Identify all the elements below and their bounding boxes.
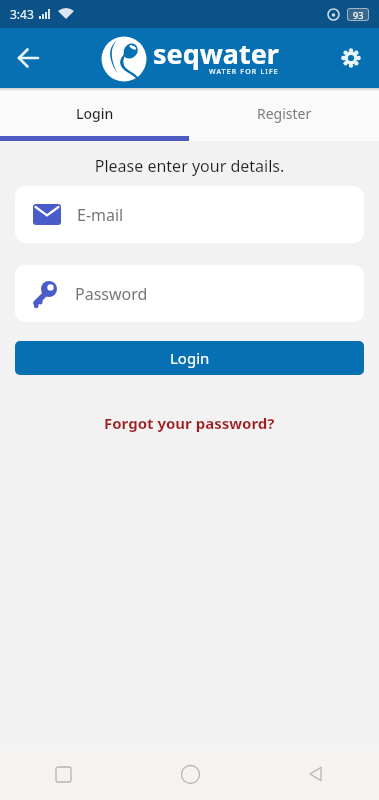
staticText: 93 <box>353 9 364 20</box>
staticText: Password <box>75 283 148 305</box>
button[interactable] <box>127 748 253 800</box>
staticText: Register <box>257 104 312 123</box>
button[interactable] <box>323 30 379 86</box>
button[interactable]: Login <box>0 91 189 136</box>
button[interactable]: Forgot your password? <box>0 413 379 433</box>
staticText: Login <box>170 348 210 368</box>
button[interactable]: Password <box>15 265 364 322</box>
staticText: seqwater <box>153 35 279 72</box>
button[interactable]: Register <box>189 91 379 136</box>
button[interactable]: E-mail <box>15 186 364 243</box>
button[interactable]: Login <box>15 341 364 375</box>
button[interactable] <box>0 30 56 86</box>
staticText: E-mail <box>77 204 124 226</box>
button[interactable] <box>253 748 379 800</box>
staticText: Forgot your password? <box>104 413 275 433</box>
staticText: 3:43 <box>10 6 34 22</box>
staticText: WATER FOR LIFE <box>209 67 279 77</box>
staticText: Login <box>76 104 114 123</box>
button[interactable] <box>0 748 127 800</box>
staticText: Please enter your details. <box>0 155 379 177</box>
